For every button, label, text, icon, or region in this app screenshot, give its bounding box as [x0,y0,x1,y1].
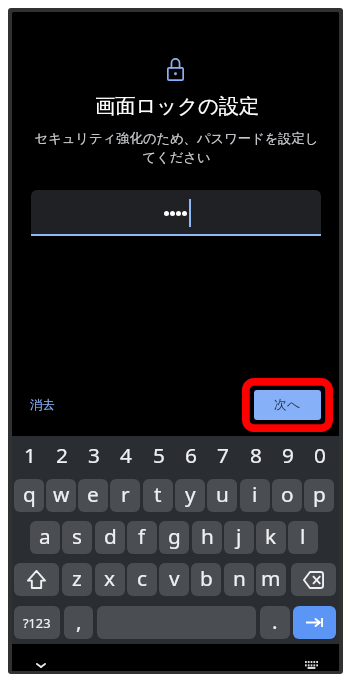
staticText: w [53,480,70,508]
button[interactable]: r [110,479,140,512]
button[interactable]: 5 [143,440,175,472]
button[interactable]: ?123 [14,606,60,639]
staticText: ?123 [23,614,51,631]
button[interactable]: Change keyboard [302,656,320,671]
staticText: 9 [282,441,294,469]
button[interactable]: 0 [304,440,336,472]
button[interactable]: z [62,563,92,596]
button[interactable]: q [14,479,44,512]
button[interactable]: 4 [110,440,142,472]
staticText: 7 [217,441,229,469]
staticText: i [252,480,258,508]
staticText: 3 [88,441,100,469]
button[interactable]: y [175,479,205,512]
button[interactable]: 7 [207,440,239,472]
staticText: 画面ロックの設定 [95,93,260,119]
button[interactable]: g [159,521,189,554]
staticText: n [233,564,246,592]
staticText: 6 [185,441,197,469]
button[interactable]: t [143,479,173,512]
staticText: s [72,522,82,550]
button[interactable]: c [127,563,157,596]
button[interactable] [31,190,321,236]
staticText: g [168,522,181,550]
button[interactable]: 2 [46,440,78,472]
button[interactable]: x [95,563,125,596]
staticText: u [216,480,229,508]
button[interactable]: , [64,606,93,639]
button[interactable]: l [288,521,318,554]
button[interactable]: 消去 [22,390,63,420]
button[interactable]: s [62,521,92,554]
button[interactable]: e [78,479,108,512]
staticText: z [72,564,82,592]
staticText: 8 [250,441,262,469]
button[interactable]: o [272,479,302,512]
button[interactable]: 6 [175,440,207,472]
staticText: 0 [314,441,326,469]
staticText: x [104,564,116,592]
staticText: f [138,522,146,550]
staticText: セキュリティ強化のため、パスワードを設定してください [31,130,322,166]
staticText: l [300,522,306,550]
button[interactable]: Enter [293,606,336,639]
button[interactable]: Hide keyboard [31,655,51,671]
staticText: k [265,522,277,550]
button[interactable]: 8 [240,440,272,472]
staticText: t [154,480,162,508]
button[interactable]: w [46,479,76,512]
staticText: p [313,480,326,508]
button[interactable]: n [224,563,254,596]
staticText: m [261,564,281,592]
other: Lock [167,58,184,81]
staticText: a [39,522,51,550]
button[interactable]: 3 [78,440,110,472]
staticText: 消去 [30,397,55,413]
staticText: 4 [120,441,132,469]
button[interactable]: h [192,521,222,554]
button[interactable]: i [240,479,270,512]
staticText: y [185,480,196,508]
staticText: q [23,480,36,508]
staticText: d [104,522,117,550]
staticText: 2 [56,441,68,469]
staticText: 5 [153,441,165,469]
button[interactable]: m [256,563,286,596]
button[interactable]: f [127,521,157,554]
button[interactable]: 9 [272,440,304,472]
staticText: o [281,480,294,508]
staticText: h [201,522,214,550]
staticText: 1 [24,441,36,469]
button[interactable]: 次へ [254,390,321,420]
button[interactable]: v [159,563,189,596]
button[interactable]: Shift [14,563,59,596]
staticText: . [272,607,278,635]
button[interactable]: Backspace [291,563,336,596]
staticText: j [236,522,242,550]
staticText: , [76,607,82,635]
staticText: r [121,480,130,508]
staticText: 次へ [274,397,301,413]
staticText: c [137,564,147,592]
button[interactable]: u [207,479,237,512]
staticText: e [87,480,99,508]
button[interactable]: 1 [14,440,46,472]
button[interactable]: d [95,521,125,554]
button[interactable]: k [256,521,286,554]
button[interactable]: . [260,606,290,639]
button[interactable]: p [304,479,334,512]
button[interactable]: j [224,521,254,554]
button[interactable]: a [30,521,60,554]
staticText: v [169,564,180,592]
staticText: b [200,564,213,592]
button[interactable]: b [191,563,221,596]
